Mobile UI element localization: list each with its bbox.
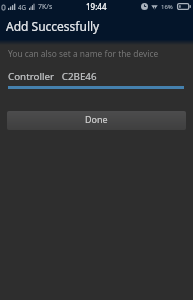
staticText: Controller C2BE46 (8, 70, 97, 83)
button[interactable]: Done (7, 111, 186, 130)
other: Mobile signal strength (29, 3, 35, 10)
other: SIM card (2, 4, 5, 10)
other: Wi-Fi (151, 4, 158, 10)
staticText: 4G (18, 3, 27, 11)
other: Alarm set (141, 3, 148, 10)
staticText: 19:44 (86, 1, 107, 12)
staticText: 16% (161, 3, 173, 11)
staticText: You can also set a name for the device (8, 48, 159, 59)
staticText: Add Successfully (6, 18, 100, 34)
staticText: Done (85, 113, 108, 125)
other: Battery 16 percent (177, 3, 191, 10)
button[interactable]: Controller C2BE46 (8, 66, 184, 89)
other: Mobile signal strength (8, 3, 16, 10)
staticText: 7K/s (38, 2, 53, 12)
